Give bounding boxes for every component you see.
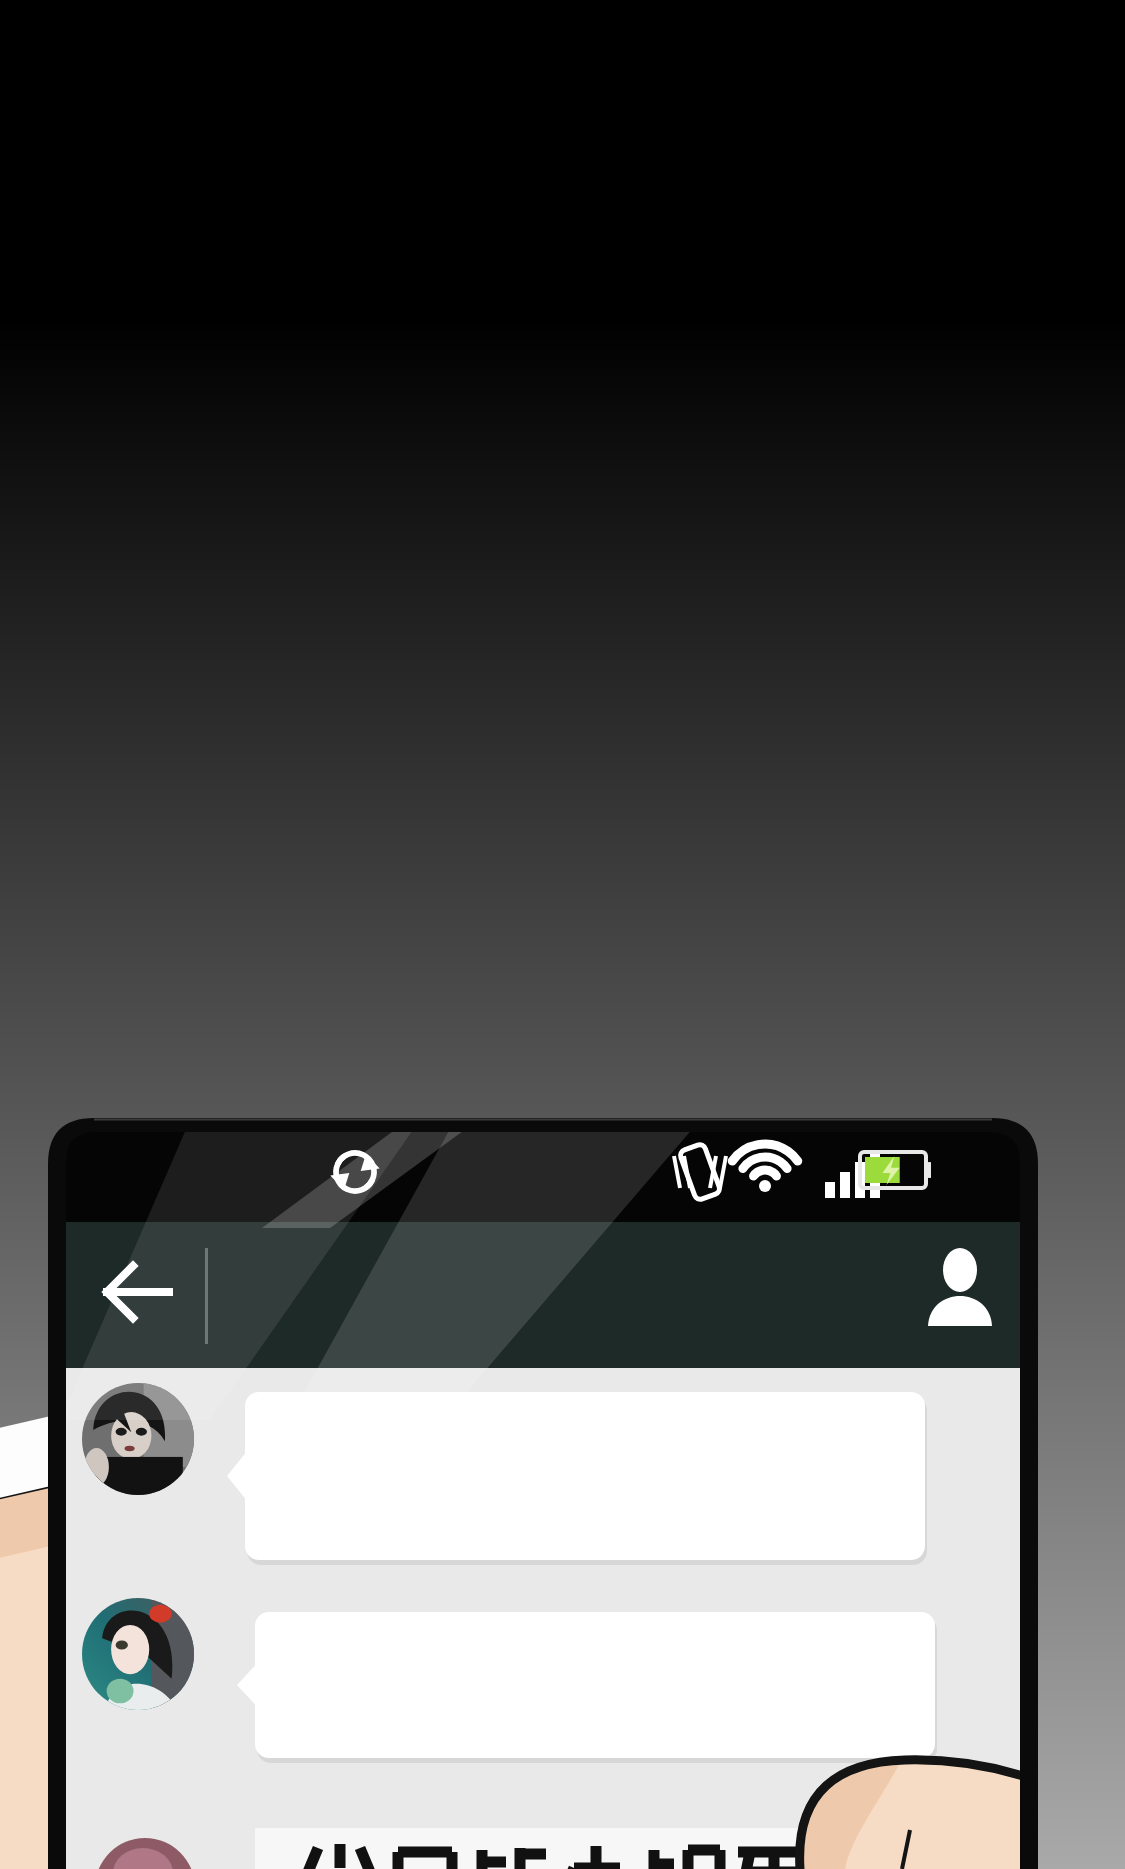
button[interactable]: Avatar of second sender	[82, 1600, 192, 1710]
button[interactable]: Contact profile	[900, 1232, 1020, 1352]
button[interactable]: Back	[78, 1232, 198, 1352]
button[interactable]	[255, 1612, 935, 1758]
button[interactable]: Avatar of first sender	[82, 1385, 192, 1495]
button[interactable]	[245, 1392, 925, 1562]
